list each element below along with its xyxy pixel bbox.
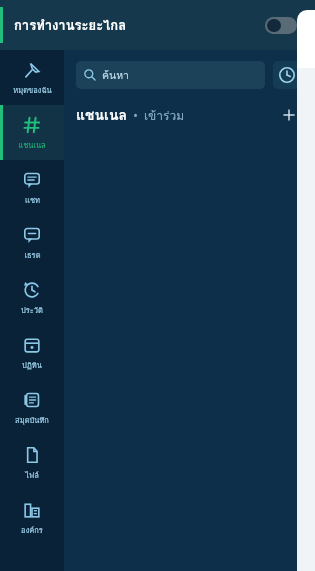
button[interactable]: ค้นหา [76,61,265,89]
staticText: เข้าร่วม [144,106,185,125]
button[interactable]: ปฏิทิน [0,325,64,380]
button[interactable]: เธรด [0,215,64,270]
staticText: แชนเนล [76,104,127,126]
staticText: หมุดของฉัน [13,84,52,96]
staticText: สมุดบันทึก [15,414,49,426]
button[interactable]: ประวัติ [0,270,64,325]
button[interactable]: Add channel [277,103,301,127]
staticText: ปฏิทิน [22,359,42,371]
button[interactable]: หมุดของฉัน [0,50,64,105]
button[interactable]: ไฟล์ [0,435,64,490]
button[interactable]: แชนเนล [76,104,185,126]
button[interactable]: แชนเนล [0,105,64,160]
staticText: แชนเนล [18,139,46,151]
button[interactable]: แชท [0,160,64,215]
staticText: การทำงานระยะไกล [14,15,127,36]
button[interactable]: สมุดบันทึก [0,380,64,435]
button[interactable]: องค์กร [0,490,64,545]
button[interactable]: Toggle remote work [265,17,297,34]
staticText: • [127,107,144,123]
staticText: ประวัติ [21,304,43,316]
staticText: ไฟล์ [25,469,39,481]
staticText: แชท [25,194,40,206]
staticText: เธรด [24,249,41,261]
staticText: ค้นหา [102,67,130,84]
button[interactable]: Recent [273,61,301,89]
staticText: องค์กร [21,524,43,536]
